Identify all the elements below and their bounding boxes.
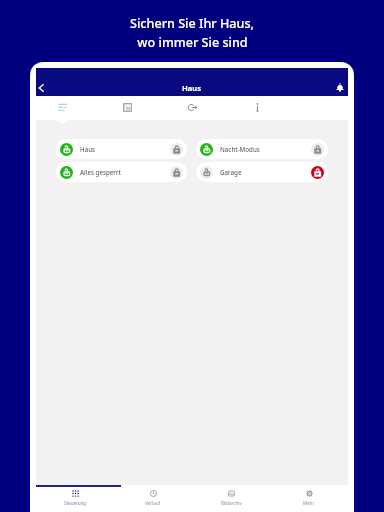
button[interactable]: Zurück <box>33 80 49 96</box>
staticText: Garage <box>220 168 311 176</box>
button[interactable]: Nacht-Modus <box>196 139 328 159</box>
staticText: Sichern Sie Ihr Haus, <box>130 15 254 32</box>
button[interactable]: Bildarchiv <box>192 487 270 512</box>
button[interactable]: Benachrichtigungen <box>332 79 348 95</box>
staticText: Mehr <box>303 500 315 506</box>
button[interactable]: Verlauf <box>114 487 192 512</box>
staticText: Bildarchiv <box>221 500 242 506</box>
staticText: wo immer Sie sind <box>137 34 248 51</box>
staticText: Alles gesperrt <box>80 168 170 176</box>
button[interactable]: Steuerung <box>36 487 114 512</box>
staticText: Nacht-Modus <box>220 145 311 153</box>
staticText: Verlauf <box>145 500 161 506</box>
button[interactable]: Garage <box>196 162 328 182</box>
button[interactable]: Filter <box>30 95 95 119</box>
staticText: Haus <box>80 145 170 153</box>
button[interactable]: Abmelden <box>160 95 225 119</box>
button[interactable]: Alles gesperrt <box>56 162 187 182</box>
button[interactable]: Info <box>225 95 290 119</box>
button[interactable]: Dokumente <box>95 95 160 119</box>
button[interactable]: Haus <box>56 139 187 159</box>
staticText: Steuerung <box>64 500 87 506</box>
button[interactable]: Mehr <box>270 487 348 512</box>
staticText: Haus <box>182 83 202 93</box>
